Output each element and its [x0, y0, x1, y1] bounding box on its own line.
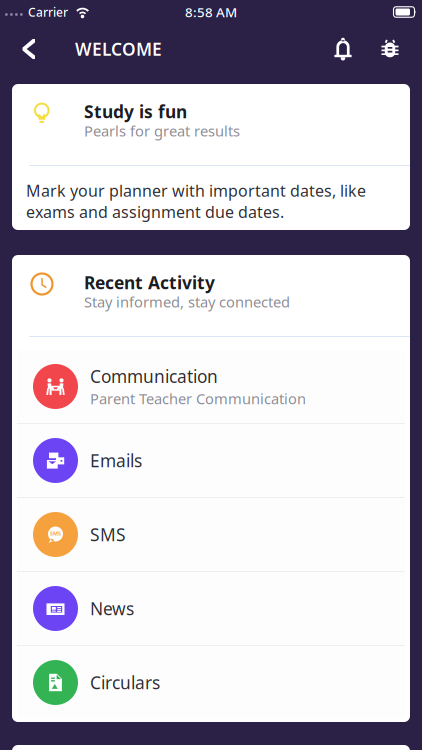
button[interactable]: WELCOME [48, 24, 170, 74]
button[interactable]: Back [10, 24, 48, 74]
staticText: Recent Activity [84, 271, 215, 294]
staticText: News [90, 597, 134, 620]
button[interactable]: Report a bug [368, 24, 412, 74]
staticText: Mark your planner with important dates, … [26, 180, 366, 222]
staticText: Circulars [90, 671, 160, 694]
staticText: Study is fun [84, 100, 187, 123]
staticText: Parent Teacher Communication [90, 389, 306, 408]
button[interactable]: News [17, 572, 405, 645]
staticText: Emails [90, 449, 142, 472]
staticText: SMS [90, 523, 126, 546]
staticText: WELCOME [75, 37, 162, 60]
button[interactable]: Notifications [318, 24, 368, 74]
button[interactable]: SMS [17, 498, 405, 571]
staticText: Stay informed, stay connected [84, 292, 290, 311]
staticText: 8:58 AM [185, 3, 237, 21]
button[interactable]: Communication [17, 350, 405, 423]
staticText: Carrier [28, 4, 68, 20]
button[interactable]: Emails [17, 424, 405, 497]
staticText: SMS [50, 530, 61, 537]
button[interactable]: Circulars [17, 646, 405, 719]
staticText: Communication [90, 365, 218, 388]
staticText: Pearls for great results [84, 121, 240, 140]
